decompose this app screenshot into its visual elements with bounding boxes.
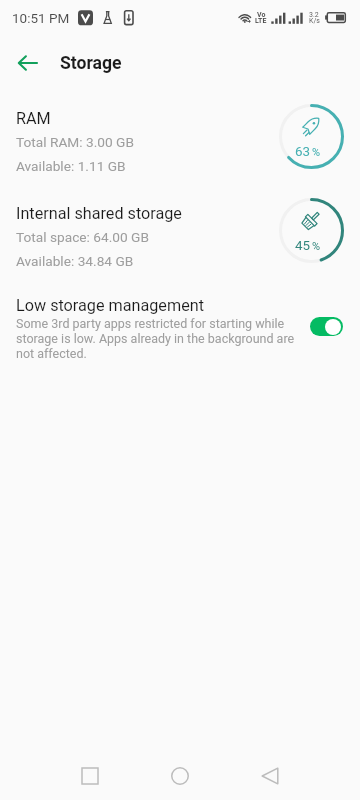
button[interactable]: Internal shared storage bbox=[16, 204, 278, 269]
button[interactable]: Low storage management, on bbox=[310, 317, 343, 336]
button[interactable]: Navigate up bbox=[8, 46, 48, 78]
staticText: 63 bbox=[295, 144, 311, 160]
button[interactable]: 63 percent used bbox=[279, 104, 344, 169]
staticText: 10:51 PM bbox=[12, 10, 70, 26]
staticText: Internal shared storage bbox=[16, 204, 182, 223]
button[interactable]: Recent apps bbox=[66, 752, 114, 800]
staticText: K/s bbox=[309, 17, 320, 25]
staticText: Available: 34.84 GB bbox=[16, 253, 134, 269]
staticText: RAM bbox=[16, 109, 51, 128]
staticText: % bbox=[312, 146, 321, 159]
staticText: Storage bbox=[60, 53, 122, 74]
staticText: Total space: 64.00 GB bbox=[16, 229, 149, 245]
staticText: 45 bbox=[295, 238, 311, 254]
staticText: Low storage management bbox=[16, 296, 204, 315]
staticText: Some 3rd party apps restricted for start… bbox=[16, 316, 301, 361]
staticText: % bbox=[312, 240, 321, 253]
button[interactable]: Back bbox=[246, 752, 294, 800]
staticText: Vo bbox=[257, 11, 266, 19]
staticText: 3.2 bbox=[309, 11, 319, 19]
staticText: Total RAM: 3.00 GB bbox=[16, 134, 134, 150]
button[interactable]: 45 percent used bbox=[279, 198, 344, 263]
staticText: Available: 1.11 GB bbox=[16, 158, 126, 174]
staticText: LTE bbox=[255, 17, 267, 25]
button[interactable]: Low storage management bbox=[16, 296, 301, 361]
button[interactable]: Home bbox=[156, 752, 204, 800]
button[interactable]: RAM bbox=[16, 109, 278, 174]
